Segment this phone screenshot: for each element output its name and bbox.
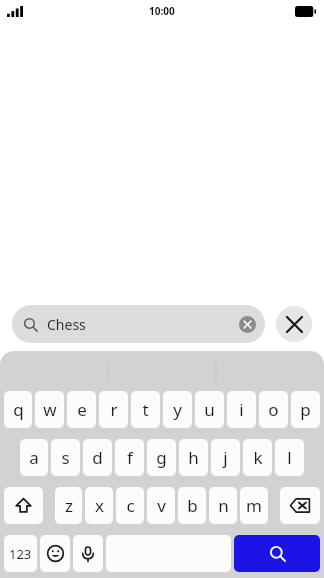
button[interactable]: i [227, 391, 256, 428]
button[interactable]: l [275, 439, 304, 476]
button[interactable]: p [291, 391, 320, 428]
button[interactable]: a [20, 439, 48, 476]
button[interactable]: Emoji [40, 535, 70, 572]
button[interactable]: n [209, 487, 237, 524]
button[interactable]: c [116, 487, 144, 524]
button[interactable]: r [99, 391, 128, 428]
staticText: Chess [47, 315, 239, 334]
button[interactable]: y [163, 391, 192, 428]
staticText: q [13, 398, 24, 421]
button[interactable]: z [55, 487, 82, 524]
button[interactable]: w [35, 391, 64, 428]
button[interactable]: k [243, 439, 272, 476]
button[interactable]: d [83, 439, 112, 476]
button[interactable]: Voice input [73, 535, 103, 572]
button[interactable]: e [67, 391, 96, 428]
button[interactable]: t [131, 391, 160, 428]
staticText: f [127, 446, 133, 469]
staticText: 10:00 [149, 4, 175, 18]
button[interactable]: q [4, 391, 32, 428]
button[interactable]: b [178, 487, 206, 524]
staticText: d [92, 446, 103, 469]
button[interactable]: v [147, 487, 175, 524]
button[interactable]: 123 [4, 535, 37, 572]
staticText: t [142, 398, 149, 421]
staticText: e [77, 398, 87, 421]
staticText: j [223, 446, 228, 469]
staticText: 123 [9, 545, 32, 563]
staticText: i [239, 398, 244, 421]
staticText: k [253, 446, 263, 469]
staticText: a [29, 446, 39, 469]
staticText: x [95, 494, 104, 517]
button[interactable]: Shift [4, 487, 43, 524]
staticText: p [300, 398, 311, 421]
staticText: c [126, 494, 135, 517]
button[interactable]: s [51, 439, 80, 476]
staticText: z [65, 494, 73, 517]
button[interactable]: g [147, 439, 176, 476]
button[interactable]: Clear text [239, 316, 256, 333]
staticText: y [173, 398, 182, 421]
staticText: o [268, 398, 279, 421]
button[interactable]: o [259, 391, 288, 428]
staticText: n [218, 494, 229, 517]
staticText: r [110, 398, 118, 421]
staticText: u [204, 398, 215, 421]
button[interactable]: m [240, 487, 268, 524]
button[interactable]: Backspace [280, 487, 320, 524]
staticText: m [246, 494, 262, 517]
staticText: g [156, 446, 167, 469]
button[interactable]: Chess [12, 305, 265, 343]
button[interactable]: j [211, 439, 240, 476]
staticText: w [43, 398, 57, 421]
staticText: v [157, 494, 166, 517]
staticText: l [287, 446, 292, 469]
button[interactable]: Close search [276, 306, 312, 342]
button[interactable]: h [179, 439, 208, 476]
button[interactable]: u [195, 391, 224, 428]
button[interactable]: f [115, 439, 144, 476]
staticText: s [61, 446, 70, 469]
button[interactable]: Search [234, 535, 320, 572]
button[interactable]: x [85, 487, 113, 524]
staticText: h [188, 446, 199, 469]
staticText: b [187, 494, 198, 517]
